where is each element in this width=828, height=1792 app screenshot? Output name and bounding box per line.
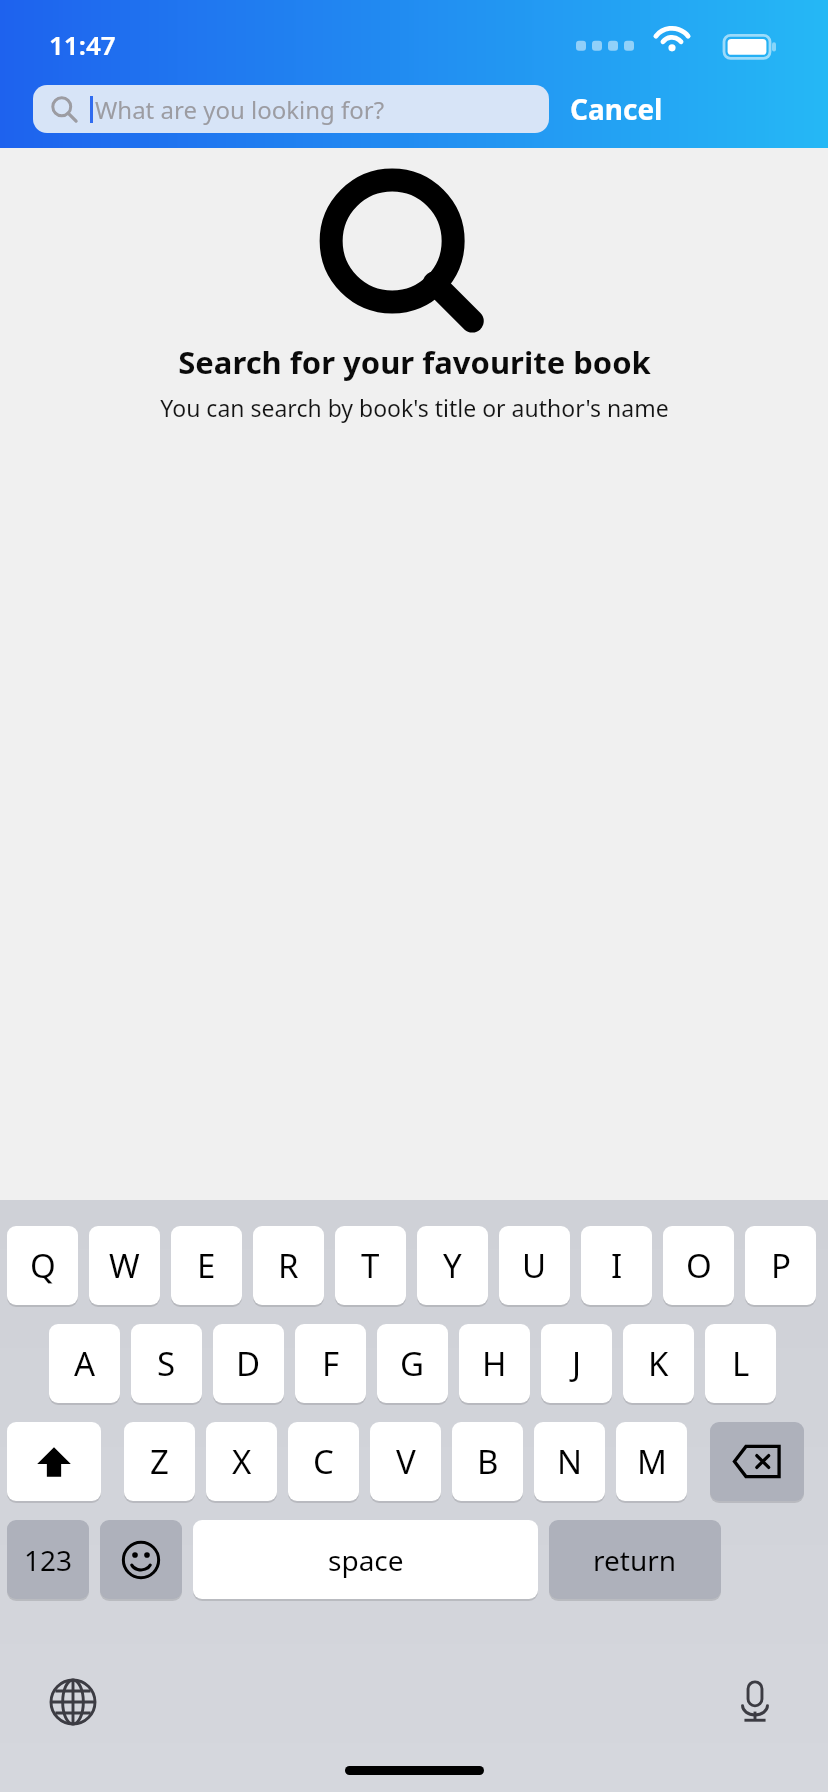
- staticText: Search for your favourite book: [178, 341, 651, 383]
- button[interactable]: return: [549, 1520, 721, 1599]
- staticText: What are you looking for?: [95, 93, 385, 126]
- button[interactable]: A: [49, 1324, 120, 1403]
- staticText: L: [732, 1341, 750, 1386]
- staticText: G: [400, 1341, 425, 1386]
- button[interactable]: O: [663, 1226, 734, 1305]
- button[interactable]: space: [193, 1520, 538, 1599]
- staticText: 123: [24, 1541, 73, 1579]
- button[interactable]: Cancel: [567, 83, 666, 135]
- button[interactable]: I: [581, 1226, 652, 1305]
- staticText: return: [593, 1541, 677, 1579]
- staticText: F: [322, 1341, 340, 1386]
- staticText: 11:47: [49, 27, 116, 62]
- staticText: E: [197, 1243, 216, 1288]
- button[interactable]: D: [213, 1324, 284, 1403]
- button[interactable]: Shift: [7, 1422, 101, 1501]
- button[interactable]: L: [705, 1324, 776, 1403]
- button[interactable]: R: [253, 1226, 324, 1305]
- staticText: Y: [443, 1243, 462, 1288]
- button[interactable]: Q: [7, 1226, 78, 1305]
- button[interactable]: G: [377, 1324, 448, 1403]
- staticText: M: [637, 1439, 667, 1484]
- button[interactable]: V: [370, 1422, 441, 1501]
- staticText: Cancel: [570, 90, 663, 128]
- staticText: U: [522, 1243, 547, 1288]
- staticText: J: [572, 1341, 582, 1386]
- button[interactable]: M: [616, 1422, 687, 1501]
- button[interactable]: S: [131, 1324, 202, 1403]
- staticText: You can search by book's title or author…: [160, 392, 669, 423]
- staticText: I: [611, 1243, 623, 1288]
- button[interactable]: C: [288, 1422, 359, 1501]
- button[interactable]: U: [499, 1226, 570, 1305]
- staticText: X: [232, 1439, 252, 1484]
- button[interactable]: X: [206, 1422, 277, 1501]
- button[interactable]: J: [541, 1324, 612, 1403]
- button[interactable]: Backspace: [710, 1422, 804, 1501]
- staticText: space: [328, 1541, 404, 1579]
- staticText: A: [74, 1341, 96, 1386]
- staticText: B: [477, 1439, 499, 1484]
- button[interactable]: Y: [417, 1226, 488, 1305]
- button[interactable]: F: [295, 1324, 366, 1403]
- staticText: S: [157, 1341, 176, 1386]
- staticText: D: [236, 1341, 261, 1386]
- staticText: P: [771, 1243, 791, 1288]
- button[interactable]: K: [623, 1324, 694, 1403]
- staticText: K: [648, 1341, 669, 1386]
- button[interactable]: 123: [7, 1520, 89, 1599]
- staticText: R: [278, 1243, 299, 1288]
- button[interactable]: N: [534, 1422, 605, 1501]
- button[interactable]: What are you looking for?: [33, 85, 549, 133]
- staticText: C: [313, 1439, 334, 1484]
- staticText: Z: [150, 1439, 169, 1484]
- button[interactable]: P: [745, 1226, 816, 1305]
- button[interactable]: B: [452, 1422, 523, 1501]
- staticText: O: [686, 1243, 712, 1288]
- staticText: Q: [30, 1243, 56, 1288]
- button[interactable]: Emoji: [100, 1520, 182, 1599]
- staticText: W: [109, 1243, 140, 1288]
- button[interactable]: Change keyboard: [44, 1673, 102, 1731]
- staticText: V: [396, 1439, 416, 1484]
- staticText: N: [557, 1439, 583, 1484]
- button[interactable]: Z: [124, 1422, 195, 1501]
- button[interactable]: W: [89, 1226, 160, 1305]
- staticText: T: [361, 1243, 380, 1288]
- staticText: H: [482, 1341, 507, 1386]
- button[interactable]: T: [335, 1226, 406, 1305]
- button[interactable]: H: [459, 1324, 530, 1403]
- button[interactable]: E: [171, 1226, 242, 1305]
- button[interactable]: Dictation: [726, 1673, 784, 1731]
